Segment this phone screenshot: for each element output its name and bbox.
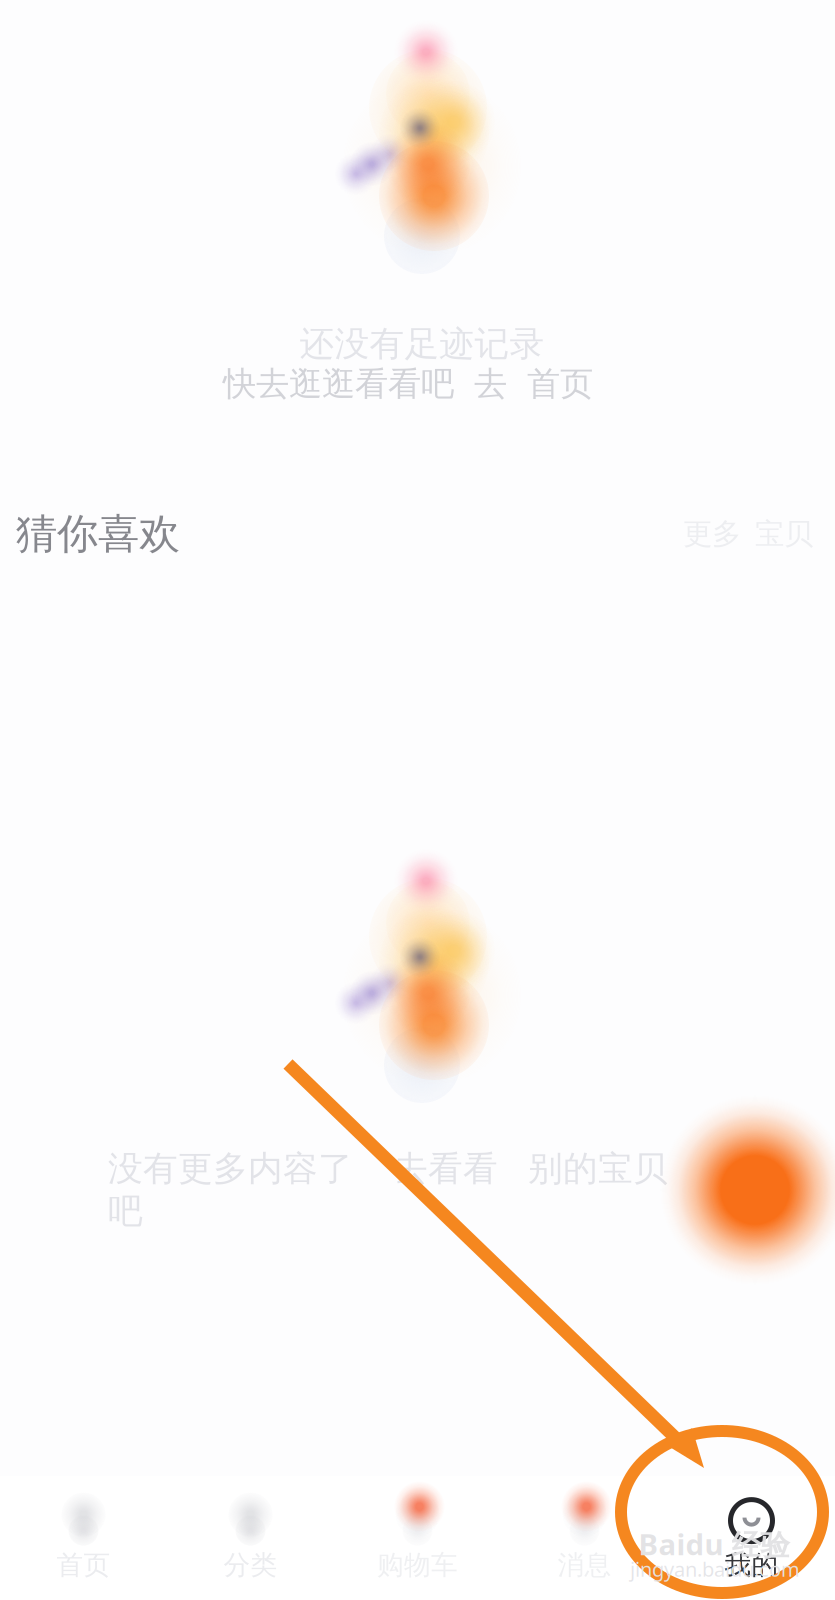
- staticText: 我的: [724, 1549, 778, 1581]
- button[interactable]: 猜你喜欢: [16, 509, 180, 559]
- staticText: 宝贝: [755, 516, 813, 552]
- staticText: 更多: [683, 516, 741, 552]
- button[interactable]: 分类: [167, 1495, 334, 1581]
- button[interactable]: 购物车: [334, 1495, 501, 1581]
- staticText: 消息: [557, 1549, 611, 1581]
- staticText: Baidu 经验: [638, 1524, 789, 1563]
- staticText: 分类: [223, 1549, 277, 1581]
- staticText: 快去逛逛看看吧 去 首页: [223, 363, 593, 404]
- staticText: 购物车: [377, 1549, 458, 1581]
- button[interactable]: 首页: [0, 1495, 167, 1581]
- button[interactable]: 更多: [683, 516, 819, 552]
- button[interactable]: 我的: [668, 1495, 835, 1581]
- staticText: 还没有足迹记录: [299, 323, 544, 365]
- staticText: jingyan.baidu.com: [630, 1556, 800, 1582]
- button[interactable]: 回到顶部: [681, 1116, 829, 1264]
- button[interactable]: 消息: [501, 1495, 668, 1581]
- staticText: 首页: [56, 1549, 110, 1581]
- staticText: 没有更多内容了 去看看 别的宝贝吧: [108, 1147, 668, 1233]
- staticText: 猜你喜欢: [16, 509, 180, 559]
